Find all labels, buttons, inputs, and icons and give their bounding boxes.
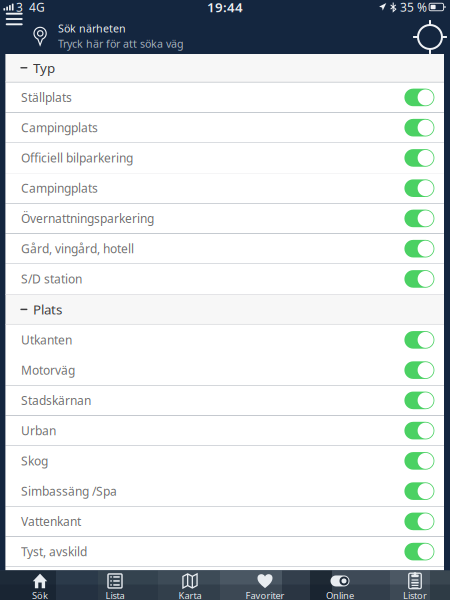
button[interactable]: Övernattningsparkering xyxy=(5,203,444,233)
staticText: Sök närheten xyxy=(58,21,126,35)
button[interactable]: Urban xyxy=(5,415,444,446)
button[interactable]: Ställplats xyxy=(5,82,444,112)
staticText: 35 % xyxy=(400,0,427,15)
button[interactable]: Skog xyxy=(5,446,444,476)
staticText: 3 xyxy=(16,0,23,15)
staticText: Motorväg xyxy=(21,362,75,378)
staticText: Sök xyxy=(32,589,48,600)
staticText: Vattenkant xyxy=(21,513,81,529)
button[interactable]: Menu xyxy=(6,13,23,25)
staticText: Officiell bilparkering xyxy=(21,150,133,166)
staticText: Övernattningsparkering xyxy=(21,210,154,226)
button[interactable]: Sök närheten xyxy=(33,25,450,47)
staticText: Lista xyxy=(105,589,124,600)
button[interactable]: Simbassäng /Spa xyxy=(5,476,444,506)
staticText: Karta xyxy=(178,589,201,600)
button[interactable]: Gård, vingård, hotell xyxy=(5,234,444,264)
staticText: S/D station xyxy=(21,271,82,287)
staticText: Listor xyxy=(403,589,427,600)
staticText: 4G xyxy=(29,0,45,15)
button[interactable]: S/D station xyxy=(5,264,444,294)
button[interactable]: Karta xyxy=(152,570,227,600)
button[interactable]: Favoriter xyxy=(227,570,302,600)
button[interactable]: Campingplats xyxy=(5,112,444,143)
staticText: 19:44 xyxy=(207,0,243,16)
staticText: Urban xyxy=(21,423,56,439)
staticText: Typ xyxy=(33,59,55,77)
staticText: Favoriter xyxy=(245,589,284,600)
button[interactable]: Online xyxy=(302,570,377,600)
staticText: Gård, vingård, hotell xyxy=(21,241,134,257)
button[interactable]: Utkanten xyxy=(5,325,444,355)
button[interactable]: Lista xyxy=(77,570,152,600)
button[interactable]: Tyst, avskild xyxy=(5,536,444,567)
button[interactable]: Listor xyxy=(377,570,450,600)
staticText: Skog xyxy=(21,453,48,469)
staticText: Stadskärnan xyxy=(21,392,91,408)
staticText: Tryck här för att söka väg xyxy=(58,36,184,51)
staticText: Ställplats xyxy=(21,89,72,105)
button[interactable]: Motorväg xyxy=(5,355,444,385)
button[interactable]: Officiell bilparkering xyxy=(5,143,444,173)
button[interactable]: Sök xyxy=(2,570,77,600)
button[interactable]: Plats xyxy=(5,294,444,325)
staticText: Campingplats xyxy=(21,120,98,136)
button[interactable]: Stadskärnan xyxy=(5,385,444,415)
button[interactable]: Vattenkant xyxy=(5,506,444,536)
staticText: Plats xyxy=(33,300,62,318)
staticText: Utkanten xyxy=(21,332,72,348)
staticText: Simbassäng /Spa xyxy=(21,483,117,499)
button[interactable]: Typ xyxy=(5,54,444,82)
staticText: Tyst, avskild xyxy=(21,544,87,560)
button[interactable]: Campingplats xyxy=(5,173,444,203)
staticText: Campingplats xyxy=(21,180,98,196)
staticText: Online xyxy=(326,589,354,600)
button[interactable]: Center on location xyxy=(415,22,445,52)
